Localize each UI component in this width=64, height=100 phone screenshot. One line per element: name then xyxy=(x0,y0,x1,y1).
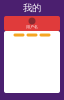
staticText: 我的 xyxy=(23,2,41,14)
staticText: 用户名 xyxy=(26,24,38,29)
